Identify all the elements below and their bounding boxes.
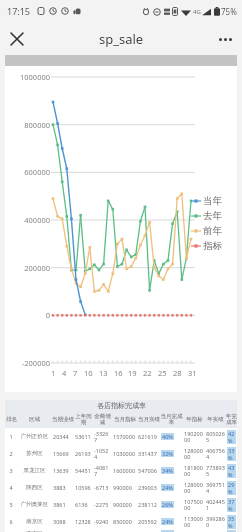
staticText: 10 [84, 368, 93, 378]
staticText: 7738935 [206, 464, 225, 477]
staticText: 16 [114, 368, 123, 378]
staticText: 12800000 [184, 481, 204, 494]
staticText: 205592 [138, 518, 159, 525]
staticText: 陕西区 [18, 484, 51, 491]
staticText: 3992860 [206, 515, 225, 528]
staticText: 3 [6, 467, 16, 474]
staticText: 3088 [53, 518, 73, 525]
staticText: 4G [193, 8, 201, 16]
staticText: 29% [228, 481, 235, 495]
button[interactable]: 1 [5, 428, 237, 445]
staticText: -33267 [94, 430, 111, 443]
button[interactable]: 指标 [191, 238, 222, 253]
staticText: 17:15 [7, 5, 31, 17]
staticText: 54451 [75, 467, 92, 474]
staticText: 区域 [29, 416, 40, 423]
staticText: 43% [228, 464, 235, 478]
staticText: 广州正价区 [18, 433, 51, 440]
staticText: 800000 [5, 120, 50, 130]
button[interactable]: 1000000 [5, 55, 237, 392]
staticText: 331437 [138, 450, 159, 457]
staticText: 1600000 [113, 467, 136, 474]
staticText: 6136 [75, 501, 92, 508]
staticText: 当月完成率 [160, 413, 183, 426]
staticText: 18180000 [184, 464, 204, 477]
staticText: 1 [6, 433, 16, 440]
staticText: -9240 [94, 518, 111, 525]
staticText: 28 [173, 368, 182, 378]
staticText: 32% [162, 450, 173, 457]
staticText: 12800000 [184, 447, 204, 460]
staticText: 8050265 [206, 430, 225, 443]
button[interactable]: 4 [5, 479, 237, 496]
staticText: 广州奥莱区 [18, 501, 51, 508]
staticText: 33% [228, 447, 235, 461]
staticText: 31 [188, 368, 197, 378]
staticText: -6713 [94, 484, 111, 491]
staticText: 15669 [53, 450, 73, 457]
staticText: 1030000 [113, 450, 136, 457]
button[interactable]: 前年 [191, 223, 222, 238]
button[interactable]: More options [212, 26, 238, 52]
staticText: 24% [162, 484, 173, 491]
button[interactable]: 5 [5, 496, 237, 513]
staticText: -10524 [94, 447, 111, 460]
staticText: 4 [6, 484, 16, 491]
button[interactable]: 当年 [191, 193, 222, 208]
staticText: 金额增减 [93, 413, 112, 426]
staticText: 4 [62, 368, 67, 378]
button[interactable]: 7 [5, 530, 237, 532]
staticText: 35% [228, 515, 235, 529]
button[interactable]: 2 [5, 445, 237, 462]
staticText: 24% [162, 518, 173, 525]
staticText: 1570000 [113, 433, 136, 440]
staticText: 4024451 [206, 498, 225, 511]
staticText: 3697514 [206, 481, 225, 494]
staticText: 13 [99, 368, 108, 378]
staticText: 当月指标 [114, 416, 136, 423]
staticText: sp_sale [99, 30, 144, 48]
staticText: 排名 [6, 416, 17, 423]
staticText: -40817 [94, 464, 111, 477]
staticText: 5 [6, 501, 16, 508]
staticText: 75% [221, 6, 237, 17]
button[interactable]: 去年 [191, 208, 222, 223]
staticText: 上年同期 [74, 413, 93, 426]
staticText: -200000 [5, 358, 50, 368]
staticText: 19 [128, 368, 137, 378]
staticText: 1000000 [5, 72, 50, 82]
staticText: 12328 [75, 518, 92, 525]
staticText: 年指标 [186, 416, 203, 423]
staticText: 200000 [5, 263, 50, 273]
staticText: 26193 [75, 450, 92, 457]
staticText: 26% [162, 501, 173, 508]
staticText: 20344 [53, 433, 73, 440]
staticText: 当月实绩 [138, 416, 160, 423]
staticText: 南京区 [18, 518, 51, 525]
button[interactable]: 6 [5, 513, 237, 530]
staticText: 6 [6, 518, 16, 525]
staticText: 600000 [5, 167, 50, 177]
staticText: 3861 [53, 501, 73, 508]
staticText: 621619 [138, 433, 159, 440]
staticText: 19020000 [184, 430, 204, 443]
staticText: 10596 [75, 484, 92, 491]
button[interactable]: 3 [5, 462, 237, 479]
staticText: 34% [162, 467, 173, 474]
staticText: 990000 [113, 484, 136, 491]
staticText: 4067564 [206, 447, 225, 460]
staticText: 42% [228, 430, 235, 444]
button[interactable]: Close [4, 26, 30, 52]
staticText: 3883 [53, 484, 73, 491]
staticText: 850000 [113, 518, 136, 525]
staticText: 40% [162, 433, 173, 440]
staticText: 西南区 [18, 530, 51, 532]
staticText: 7 [73, 368, 78, 378]
staticText: 指标 [203, 240, 222, 252]
